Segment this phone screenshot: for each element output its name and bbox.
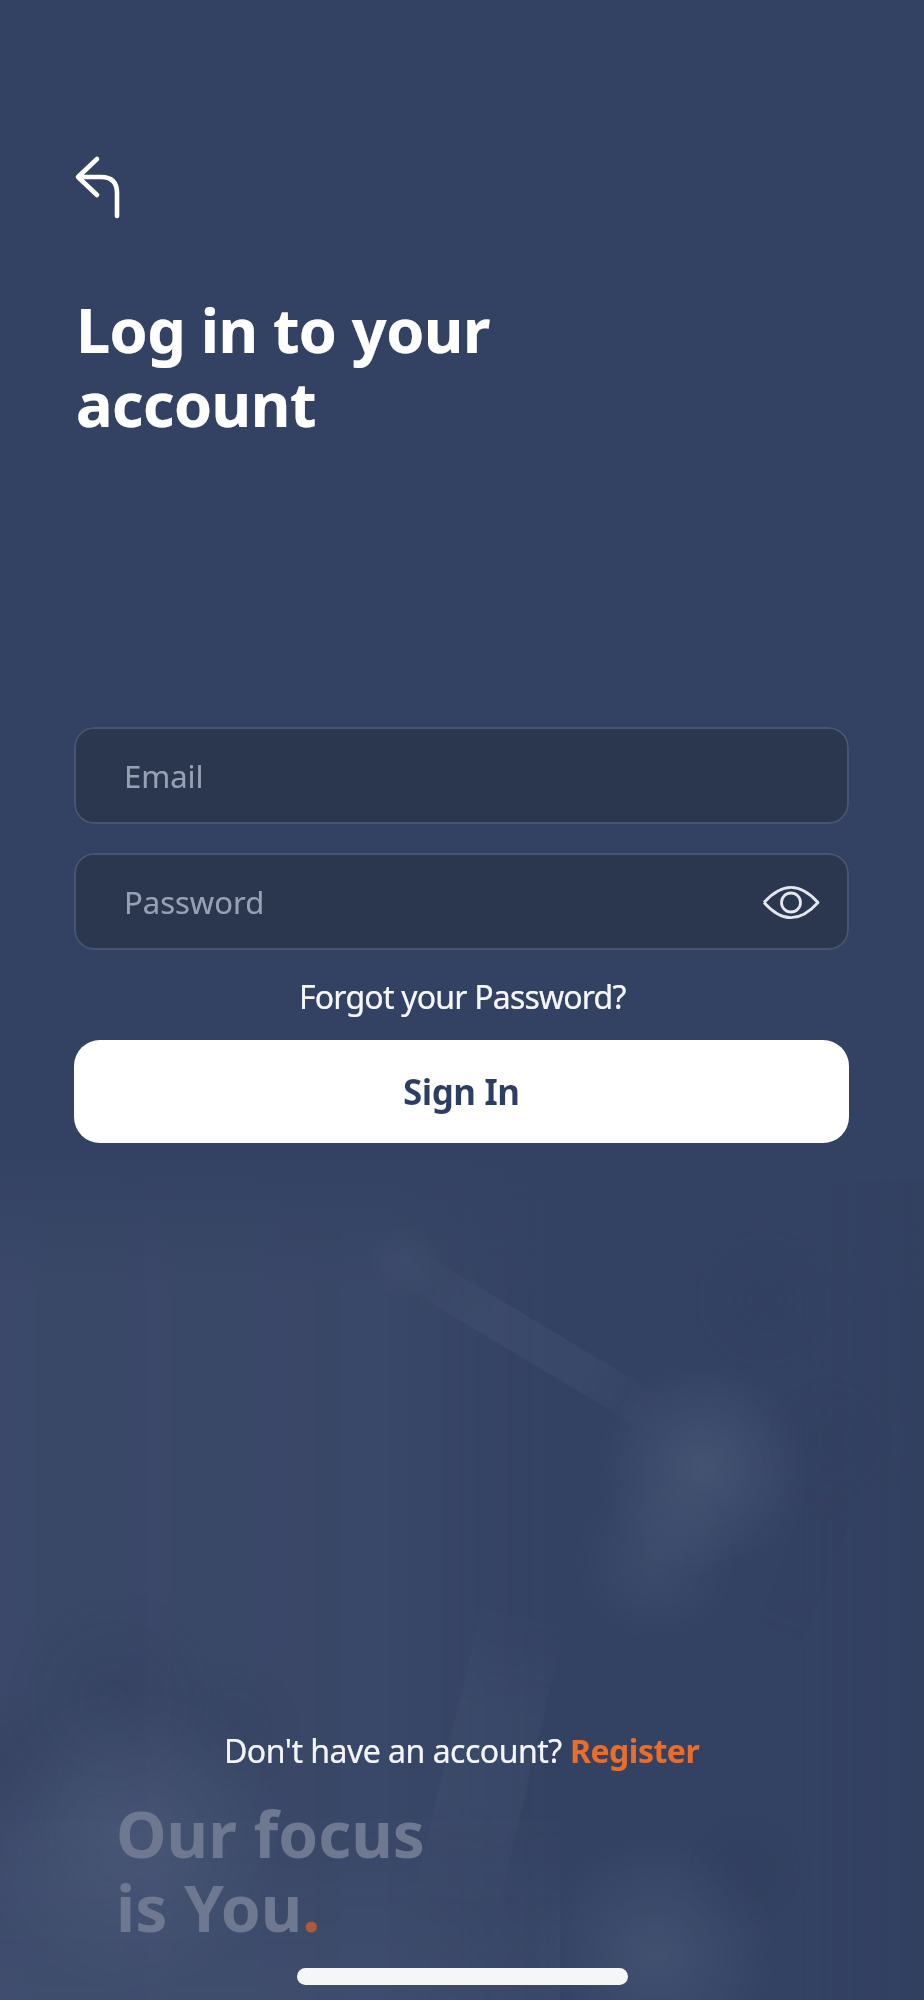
button[interactable]: Sign In	[74, 1040, 849, 1143]
staticText: Email	[124, 755, 204, 797]
button[interactable]	[62, 142, 134, 232]
button[interactable]: Register	[570, 1729, 700, 1773]
button[interactable]	[759, 878, 823, 926]
staticText: Sign In	[403, 1068, 520, 1116]
button[interactable]: Forgot your Password?	[299, 975, 626, 1019]
staticText: Password	[124, 881, 265, 923]
staticText: Don't have an account?	[224, 1729, 570, 1773]
staticText: Our focus is You.	[116, 1790, 425, 1951]
button[interactable]: Email	[74, 727, 849, 824]
button[interactable]: Password	[74, 853, 849, 950]
staticText: Log in to your account	[76, 288, 490, 445]
